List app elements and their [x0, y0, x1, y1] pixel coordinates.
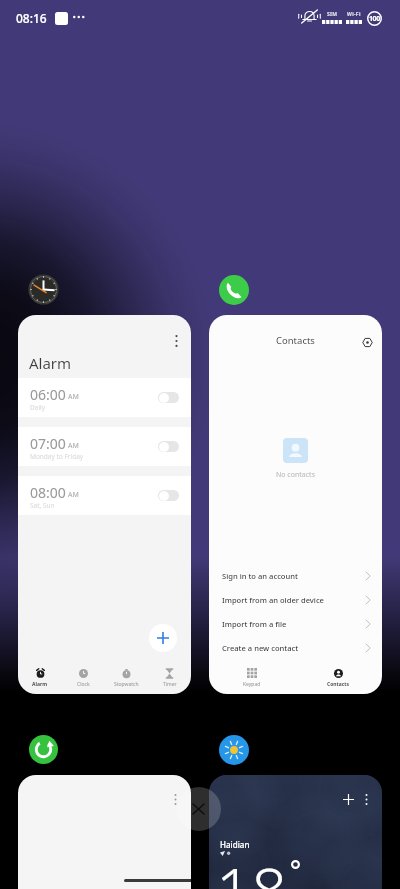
staticText: Create a new contact: [222, 643, 299, 653]
staticText: 07:00: [30, 434, 66, 453]
staticText: Import from a file: [222, 619, 287, 629]
button[interactable]: Add alarm: [149, 624, 177, 652]
other: More options: [365, 794, 368, 805]
other: Add city: [343, 794, 354, 805]
button[interactable]: [158, 441, 179, 452]
button[interactable]: Contacts: [209, 315, 382, 694]
staticText: Sat, Sun: [30, 501, 55, 510]
staticText: 08:00: [30, 483, 66, 502]
staticText: No contacts: [276, 470, 315, 480]
staticText: Wi-Fi: [347, 11, 361, 18]
button[interactable]: [158, 392, 179, 403]
button[interactable]: Contacts: [295, 658, 382, 694]
staticText: Import from an older device: [222, 595, 324, 605]
staticText: AM: [68, 441, 79, 451]
staticText: Clock: [77, 681, 90, 688]
button[interactable]: Add city: [209, 775, 382, 889]
staticText: Stopwatch: [114, 681, 139, 688]
button[interactable]: Stopwatch: [105, 658, 148, 694]
button[interactable]: Alarm: [18, 658, 62, 694]
staticText: Contacts: [276, 334, 315, 347]
button[interactable]: Timer: [148, 658, 191, 694]
staticText: Sign in to an account: [222, 571, 298, 581]
button[interactable]: More options: [18, 775, 191, 889]
staticText: Alarm: [32, 681, 48, 688]
other: More: [73, 14, 85, 20]
button[interactable]: Create a new contact: [209, 636, 382, 660]
button[interactable]: 08:00: [18, 476, 191, 515]
button[interactable]: Clock: [62, 658, 105, 694]
staticText: Alarm: [29, 353, 72, 373]
button[interactable]: [158, 490, 179, 501]
other: More options: [174, 794, 177, 805]
staticText: SIM: [327, 11, 338, 18]
staticText: Contacts: [327, 681, 350, 688]
staticText: Timer: [163, 681, 177, 688]
staticText: Monday to Friday: [30, 452, 84, 461]
other: Settings: [362, 337, 373, 348]
staticText: 18: [216, 848, 287, 889]
staticText: AM: [68, 392, 79, 402]
staticText: Keypad: [243, 681, 261, 688]
button[interactable]: More options: [18, 315, 191, 694]
button[interactable]: Keypad: [209, 658, 295, 694]
button[interactable]: 07:00: [18, 427, 191, 466]
staticText: AM: [68, 490, 79, 500]
button[interactable]: Close: [177, 787, 221, 831]
button[interactable]: Sign in to an account: [209, 564, 382, 588]
staticText: Haidian: [220, 839, 250, 850]
other: Silent mode: [301, 9, 318, 24]
staticText: 08:16: [16, 10, 47, 26]
button[interactable]: Import from an older device: [209, 588, 382, 612]
staticText: 06:00: [30, 385, 66, 404]
other: More options: [175, 335, 178, 347]
button[interactable]: Import from a file: [209, 612, 382, 636]
staticText: Daily: [30, 403, 46, 412]
staticText: 100: [369, 14, 380, 24]
button[interactable]: 06:00: [18, 378, 191, 417]
